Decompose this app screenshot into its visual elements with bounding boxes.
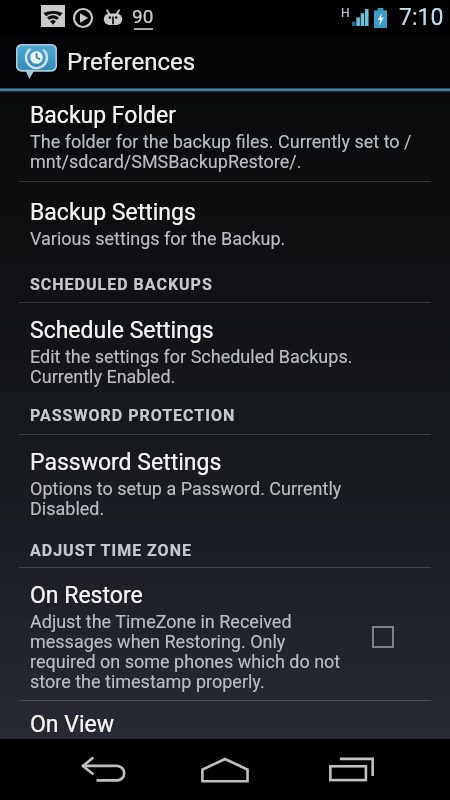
staticText: Options to setup a Password. Currently D… [30,478,342,519]
button[interactable]: Backup Settings [0,182,450,267]
staticText: Backup Folder [30,102,176,129]
staticText: ADJUST TIME ZONE [30,541,192,560]
button[interactable]: On View [0,701,450,739]
staticText: Preferences [67,48,196,76]
staticText: On View [30,711,114,738]
staticText: Schedule Settings [30,317,214,344]
staticText: 90 [132,5,154,27]
staticText: PASSWORD PROTECTION [30,406,236,425]
staticText: On Restore [30,582,143,609]
button[interactable]: Back [56,739,146,800]
button[interactable]: Home [180,739,270,800]
staticText: SCHEDULED BACKUPS [30,275,213,294]
button[interactable]: On Restore [0,568,450,700]
staticText: Password Settings [30,449,222,476]
button[interactable]: Password Settings [0,435,450,534]
button[interactable]: Schedule Settings [0,303,450,403]
staticText: Edit the settings for Scheduled Backups.… [30,346,353,387]
button[interactable]: Recent apps [306,739,396,800]
staticText: Various settings for the Backup. [30,228,286,249]
staticText: 7:10 [399,4,444,31]
button[interactable]: Backup Folder [0,92,450,181]
button[interactable]: Adjust time zone on restore [356,610,410,664]
staticText: Backup Settings [30,199,196,226]
staticText: The folder for the backup files. Current… [30,131,412,172]
button[interactable]: Preferences [0,34,450,88]
staticText: H [341,6,350,20]
staticText: Adjust the TimeZone in Received messages… [30,611,341,692]
